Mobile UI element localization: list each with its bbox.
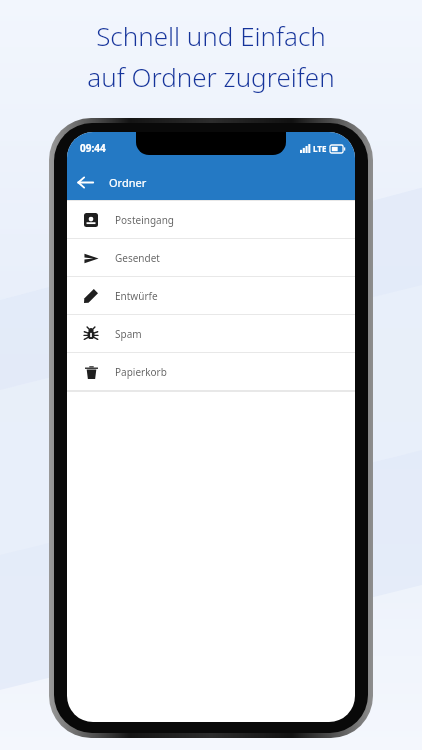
button[interactable]: Posteingang <box>67 201 355 238</box>
staticText: Posteingang <box>115 213 174 227</box>
staticText: Spam <box>115 327 142 341</box>
button[interactable]: Back <box>67 164 103 200</box>
staticText: auf Ordner zugreifen <box>87 59 335 94</box>
staticText: 09:44 <box>80 141 106 155</box>
staticText: LTE <box>313 143 327 154</box>
button[interactable]: Gesendet <box>67 239 355 276</box>
staticText: Gesendet <box>115 251 160 265</box>
staticText: Schnell und Einfach <box>96 18 326 53</box>
staticText: Ordner <box>109 175 147 190</box>
button[interactable]: Papierkorb <box>67 353 355 390</box>
button[interactable]: Entwürfe <box>67 277 355 314</box>
staticText: Entwürfe <box>115 289 158 303</box>
button[interactable]: Spam <box>67 315 355 352</box>
staticText: Papierkorb <box>115 365 167 379</box>
